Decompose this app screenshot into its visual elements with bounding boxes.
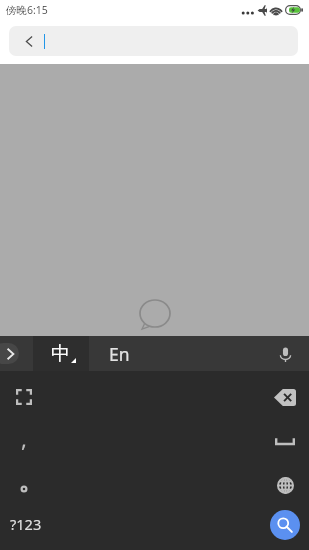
button[interactable]: , [0,417,48,459]
button[interactable]: Switch language [261,464,309,506]
staticText: En [109,342,130,366]
staticText: 傍晚6:15 [6,3,48,17]
button[interactable]: Back [9,26,298,56]
staticText: ?123 [10,514,42,534]
button[interactable]: Collapse keyboard [0,343,19,364]
button[interactable]: Fullscreen [0,376,48,418]
button[interactable]: En [90,336,260,371]
staticText: , [21,423,27,453]
button[interactable]: Search [261,504,309,546]
staticText: 中 [51,342,70,366]
button[interactable]: ?123 [2,503,50,545]
button[interactable]: Space [261,420,309,462]
button[interactable]: Period [0,468,48,510]
other: Back [22,34,37,49]
button[interactable]: Voice input [272,341,298,367]
button[interactable]: 中 [33,336,89,371]
button[interactable]: Backspace [261,376,309,418]
